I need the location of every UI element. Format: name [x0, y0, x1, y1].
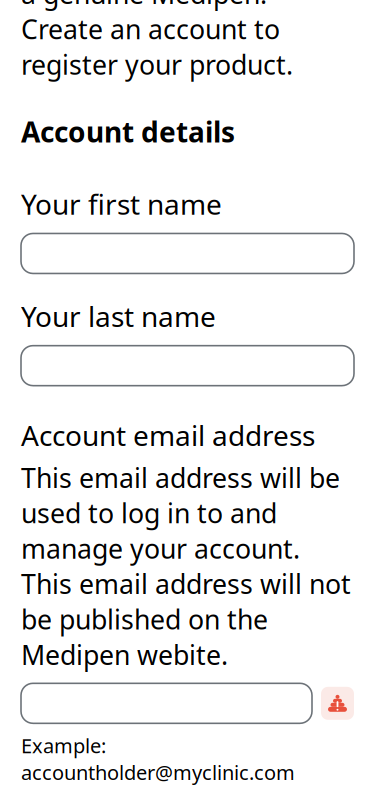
button[interactable]	[21, 346, 354, 386]
staticText: Account email address	[21, 417, 315, 454]
staticText: Your first name	[21, 185, 222, 222]
button[interactable]	[21, 683, 312, 723]
button[interactable]	[21, 233, 354, 273]
staticText: Example: accountholder@myclinic.com	[21, 732, 295, 785]
staticText: This email address will be used to log i…	[21, 460, 351, 672]
staticText: Thank you for purchasing a genuine Medip…	[21, 0, 338, 82]
staticText: Your last name	[21, 297, 216, 335]
staticText: Account details	[21, 113, 235, 150]
